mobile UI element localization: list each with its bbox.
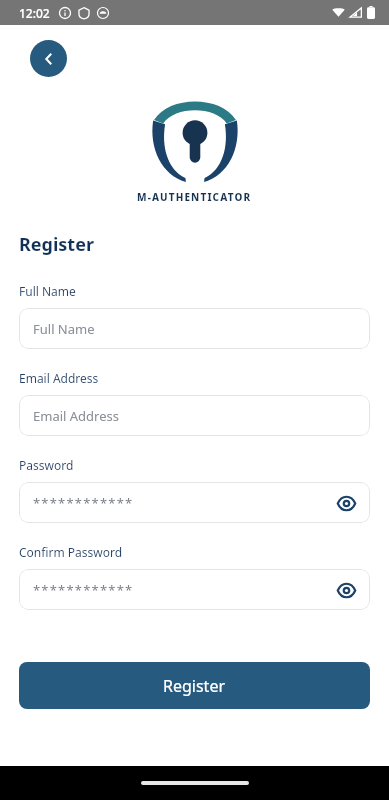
staticText: ************ — [33, 581, 335, 599]
staticText: Register — [163, 675, 226, 697]
button[interactable]: Back — [30, 40, 67, 77]
button[interactable]: Register — [19, 662, 370, 709]
staticText: Email Address — [19, 370, 99, 386]
staticText: 12:02 — [19, 5, 50, 21]
staticText: Confirm Password — [19, 544, 123, 560]
button[interactable]: ************ — [19, 569, 370, 610]
staticText: Full Name — [19, 283, 76, 299]
button[interactable]: ************ — [19, 482, 370, 523]
button[interactable]: Email Address — [19, 395, 370, 436]
staticText: Full Name — [33, 320, 357, 338]
staticText: Email Address — [33, 407, 357, 425]
staticText: M-AUTHENTICATOR — [137, 190, 252, 204]
button[interactable]: Full Name — [19, 308, 370, 349]
staticText: ************ — [33, 494, 335, 512]
staticText: Password — [19, 457, 74, 473]
button[interactable]: Show password — [335, 579, 357, 601]
staticText: Register — [19, 232, 94, 257]
button[interactable]: Show password — [335, 492, 357, 514]
